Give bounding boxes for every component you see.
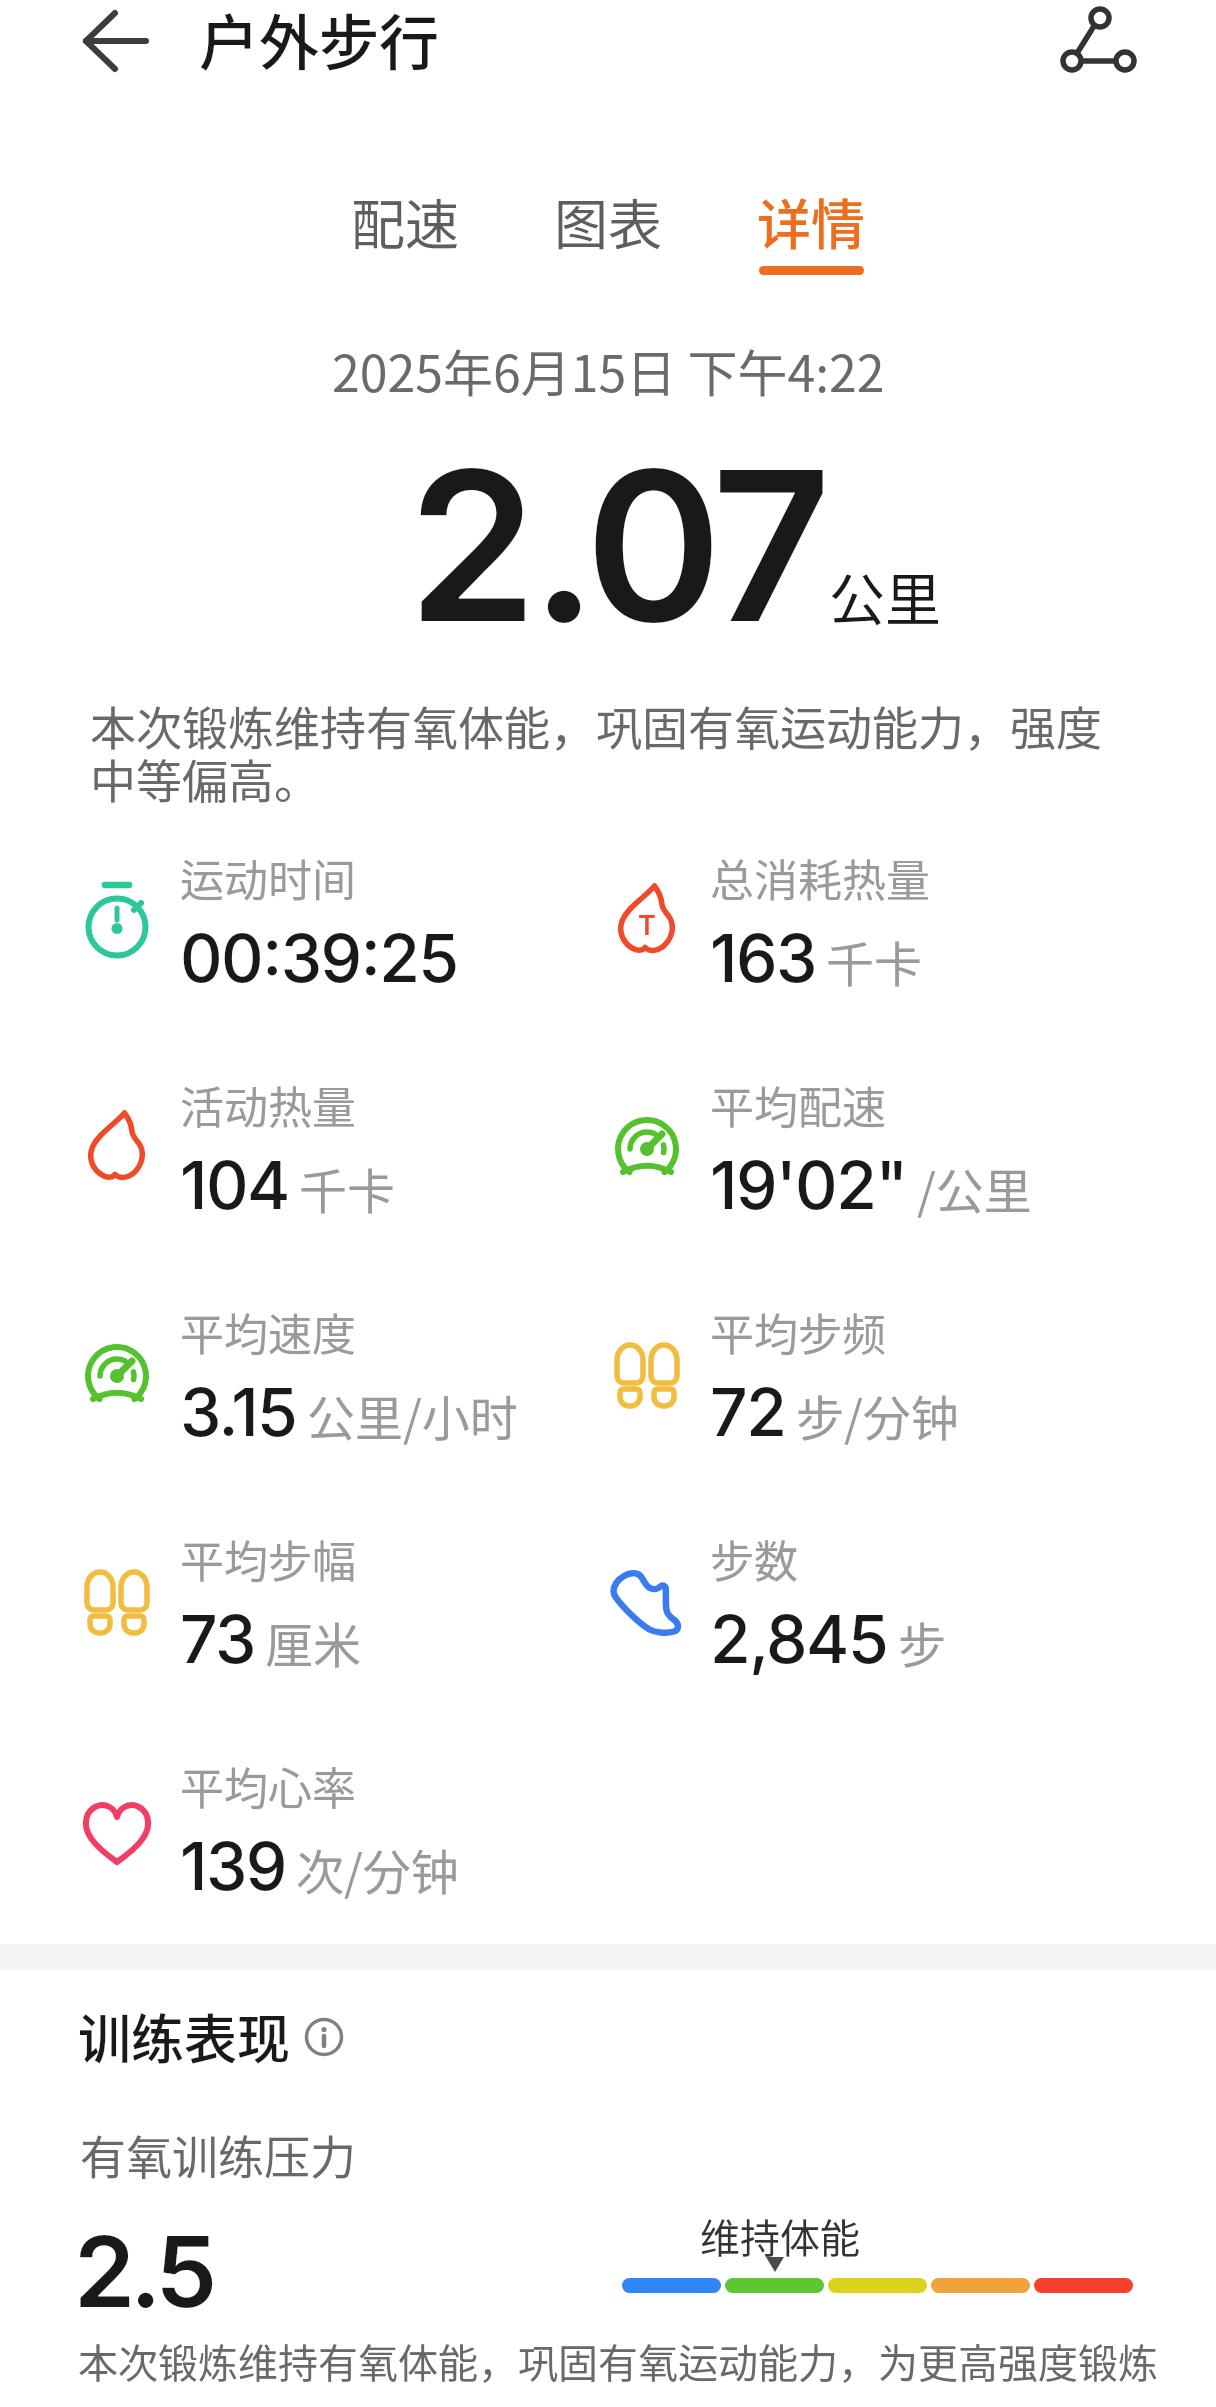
staticText: 73 bbox=[180, 1599, 255, 1679]
staticText: 详情 bbox=[757, 182, 865, 260]
button[interactable]: 配速 bbox=[351, 182, 459, 275]
staticText: 平均步频 bbox=[710, 1300, 886, 1364]
staticText: 有氧训练压力 bbox=[80, 2121, 356, 2188]
staticText: 2.5 bbox=[74, 2212, 213, 2331]
staticText: 2.07 bbox=[408, 420, 825, 670]
staticText: 步 bbox=[898, 1607, 947, 1677]
staticText: 公里/小时 bbox=[307, 1380, 518, 1450]
staticText: 平均配速 bbox=[710, 1073, 886, 1137]
staticText: 千卡 bbox=[299, 1153, 396, 1223]
staticText: 3.15 bbox=[180, 1372, 297, 1452]
staticText: 00:39:25 bbox=[180, 918, 458, 998]
staticText: 步/分钟 bbox=[796, 1380, 959, 1450]
staticText: /公里 bbox=[917, 1153, 1032, 1223]
staticText: 平均心率 bbox=[180, 1754, 356, 1818]
staticText: 千卡 bbox=[826, 926, 923, 996]
button[interactable] bbox=[302, 2015, 346, 2059]
staticText: 2,845 bbox=[710, 1599, 888, 1679]
staticText: 163 bbox=[710, 918, 816, 998]
staticText: 公里 bbox=[829, 555, 941, 636]
staticText: 平均步幅 bbox=[180, 1527, 356, 1591]
staticText: 次/分钟 bbox=[296, 1834, 459, 1904]
staticText: 104 bbox=[180, 1145, 289, 1225]
staticText: 本次锻炼维持有氧体能，巩固有氧运动能力，为更高强度锻炼 bbox=[78, 2332, 1158, 2390]
staticText: 厘米 bbox=[265, 1607, 362, 1677]
button[interactable]: 详情 bbox=[757, 182, 865, 275]
button[interactable]: 图表 bbox=[554, 182, 662, 275]
staticText: 2025年6月15日 下午4:22 bbox=[332, 334, 885, 406]
staticText: 训练表现 bbox=[78, 1998, 290, 2075]
staticText: 步数 bbox=[710, 1527, 798, 1591]
staticText: 72 bbox=[710, 1372, 786, 1452]
staticText: 配速 bbox=[351, 182, 459, 260]
staticText: 平均速度 bbox=[180, 1300, 356, 1364]
staticText: 维持体能 bbox=[700, 2207, 860, 2265]
staticText: 19'02" bbox=[710, 1145, 907, 1225]
staticText: 活动热量 bbox=[180, 1073, 356, 1137]
staticText: 户外步行 bbox=[199, 0, 439, 82]
staticText: 图表 bbox=[554, 182, 662, 260]
button[interactable] bbox=[1030, 0, 1140, 86]
staticText: 139 bbox=[180, 1826, 286, 1906]
staticText: 总消耗热量 bbox=[710, 846, 930, 910]
staticText: T bbox=[638, 909, 656, 942]
button[interactable] bbox=[64, 4, 168, 76]
staticText: 本次锻炼维持有氧体能，巩固有氧运动能力，强度 中等偏高。 bbox=[90, 692, 1102, 812]
staticText: 运动时间 bbox=[180, 846, 356, 910]
